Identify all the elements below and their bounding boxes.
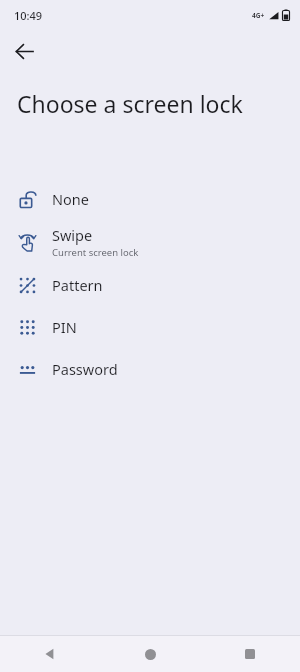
- staticText: None: [52, 189, 89, 209]
- button[interactable]: Recent apps: [200, 636, 300, 672]
- button[interactable]: Back: [0, 636, 100, 672]
- staticText: Password: [52, 359, 118, 379]
- staticText: PIN: [52, 317, 77, 337]
- staticText: Choose a screen lock: [17, 88, 243, 119]
- button[interactable]: Home: [100, 636, 200, 672]
- staticText: 10:49: [14, 8, 43, 23]
- button[interactable]: Back: [7, 34, 41, 68]
- button[interactable]: Swipe: [0, 220, 300, 264]
- button[interactable]: Password: [0, 348, 300, 390]
- staticText: Swipe: [52, 225, 93, 245]
- staticText: Pattern: [52, 275, 103, 295]
- staticText: 4G+: [252, 11, 265, 20]
- button[interactable]: None: [0, 178, 300, 220]
- staticText: Current screen lock: [52, 246, 139, 259]
- button[interactable]: PIN: [0, 306, 300, 348]
- button[interactable]: Pattern: [0, 264, 300, 306]
